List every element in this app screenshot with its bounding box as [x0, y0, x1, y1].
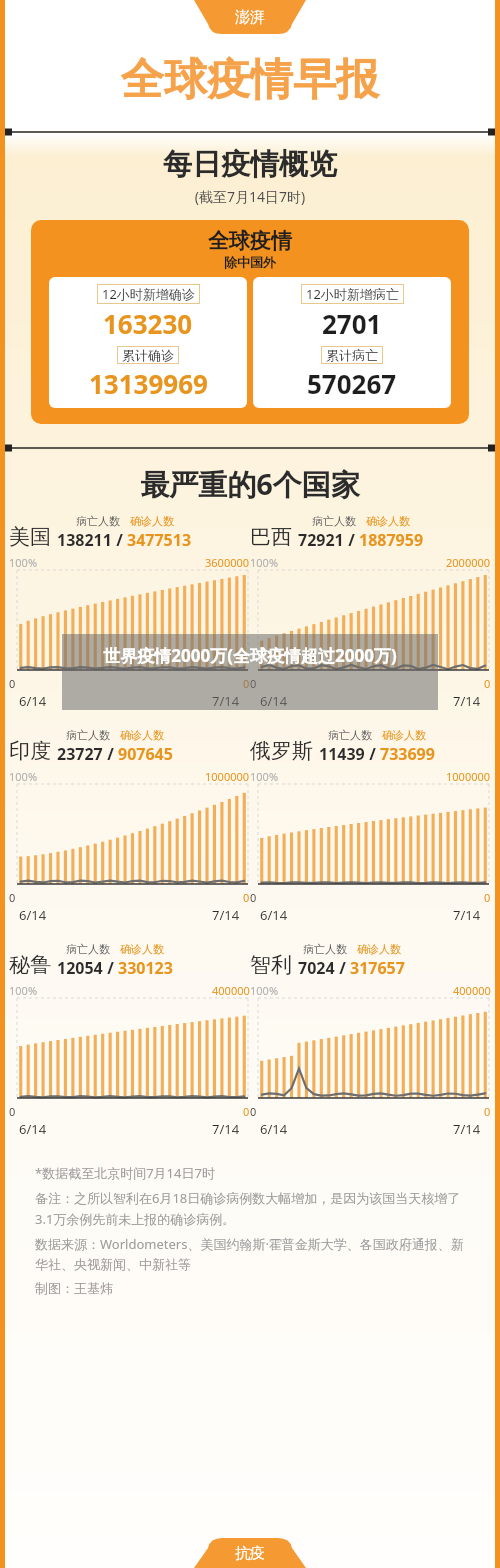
staticText: 7/14	[453, 1120, 481, 1138]
staticText: 100%	[9, 769, 38, 784]
staticText: 全球疫情早报	[121, 53, 379, 107]
staticText: 23727	[57, 743, 103, 765]
staticText: 病亡人数	[66, 942, 110, 956]
staticText: 72921	[298, 529, 344, 551]
staticText: 7/14	[453, 692, 481, 710]
staticText: 6/14	[19, 692, 47, 710]
staticText: 澎湃	[235, 8, 265, 27]
staticText: 7/14	[212, 906, 240, 924]
staticText: 0	[484, 890, 491, 905]
staticText: 病亡人数	[66, 728, 110, 742]
staticText: 6/14	[260, 906, 288, 924]
staticText: 累计确诊	[122, 347, 174, 363]
staticText: 570267	[307, 366, 397, 401]
staticText: 病亡人数	[303, 942, 347, 956]
staticText: 6/14	[19, 906, 47, 924]
staticText: 12小时新增病亡	[306, 285, 399, 303]
staticText: (截至7月14日7时)	[5, 187, 495, 206]
staticText: 6/14	[260, 692, 288, 710]
staticText: 确诊人数	[120, 728, 164, 742]
staticText: 全球疫情	[208, 228, 292, 254]
staticText: 印度	[9, 738, 51, 764]
staticText: 制图：王基炜	[35, 1280, 113, 1296]
staticText: 12小时新增确诊	[102, 285, 195, 303]
staticText: 12054	[57, 957, 103, 979]
staticText: 0	[484, 676, 491, 691]
staticText: 巴西	[250, 524, 292, 550]
staticText: 7/14	[212, 692, 240, 710]
staticText: /	[103, 957, 118, 979]
staticText: 0	[243, 1104, 250, 1119]
staticText: 100%	[9, 983, 38, 998]
staticText: 智利	[250, 952, 292, 978]
staticText: 最严重的6个国家	[5, 464, 495, 504]
staticText: /	[103, 743, 118, 765]
staticText: 累计病亡	[326, 347, 378, 363]
staticText: 13139969	[89, 366, 208, 401]
staticText: 除中国外	[224, 254, 276, 270]
staticText: 163230	[103, 306, 193, 341]
staticText: 7/14	[453, 906, 481, 924]
staticText: 病亡人数	[328, 728, 372, 742]
staticText: 0	[250, 1104, 257, 1119]
staticText: 0	[9, 676, 16, 691]
staticText: /	[365, 743, 380, 765]
staticText: 7/14	[212, 1120, 240, 1138]
staticText: 世界疫情2000万(全球疫情超过2000万)	[70, 644, 430, 667]
staticText: 0	[9, 1104, 16, 1119]
staticText: 6/14	[19, 1120, 47, 1138]
staticText: 确诊人数	[366, 514, 410, 528]
staticText: 0	[9, 890, 16, 905]
staticText: 确诊人数	[382, 728, 426, 742]
staticText: 确诊人数	[130, 514, 174, 528]
staticText: 7024	[298, 957, 335, 979]
staticText: 3600000	[205, 555, 250, 570]
staticText: 6/14	[260, 1120, 288, 1138]
staticText: 抗疫	[235, 1544, 265, 1563]
staticText: 907645	[118, 743, 173, 765]
staticText: 400000	[212, 983, 250, 998]
staticText: 0	[484, 1104, 491, 1119]
staticText: 100%	[250, 983, 279, 998]
staticText: 俄罗斯	[250, 738, 313, 764]
staticText: 1000000	[446, 769, 491, 784]
staticText: /	[112, 529, 127, 551]
staticText: 1887959	[359, 529, 424, 551]
button[interactable]: 全球疫情	[31, 220, 469, 424]
staticText: 秘鲁	[9, 952, 51, 978]
staticText: 0	[250, 676, 257, 691]
staticText: 3477513	[127, 529, 192, 551]
staticText: 0	[250, 890, 257, 905]
staticText: 100%	[9, 555, 38, 570]
staticText: 病亡人数	[76, 514, 120, 528]
staticText: 317657	[350, 957, 405, 979]
staticText: 确诊人数	[357, 942, 401, 956]
staticText: 2000000	[446, 555, 491, 570]
staticText: 138211	[57, 529, 112, 551]
staticText: 400000	[453, 983, 491, 998]
staticText: 备注：之所以智利在6月18日确诊病例数大幅增加，是因为该国当天核增了3.1万余例…	[35, 1189, 465, 1228]
staticText: 100%	[250, 555, 279, 570]
staticText: 2701	[322, 306, 382, 341]
staticText: 0	[243, 676, 250, 691]
staticText: 11439	[319, 743, 365, 765]
staticText: 1000000	[205, 769, 250, 784]
staticText: /	[344, 529, 359, 551]
staticText: 确诊人数	[120, 942, 164, 956]
staticText: 733699	[380, 743, 435, 765]
staticText: 美国	[9, 524, 51, 550]
staticText: /	[335, 957, 350, 979]
staticText: 100%	[250, 769, 279, 784]
staticText: 每日疫情概览	[5, 146, 495, 183]
staticText: 病亡人数	[312, 514, 356, 528]
button[interactable]: 抗疫 tag	[194, 1538, 306, 1568]
staticText: 0	[243, 890, 250, 905]
button[interactable]: The Paper logo	[194, 0, 306, 34]
staticText: 330123	[118, 957, 173, 979]
staticText: 数据来源：Worldometers、美国约翰斯·霍普金斯大学、各国政府通报、新华…	[35, 1235, 465, 1273]
staticText: *数据截至北京时间7月14日7时	[35, 1164, 215, 1182]
